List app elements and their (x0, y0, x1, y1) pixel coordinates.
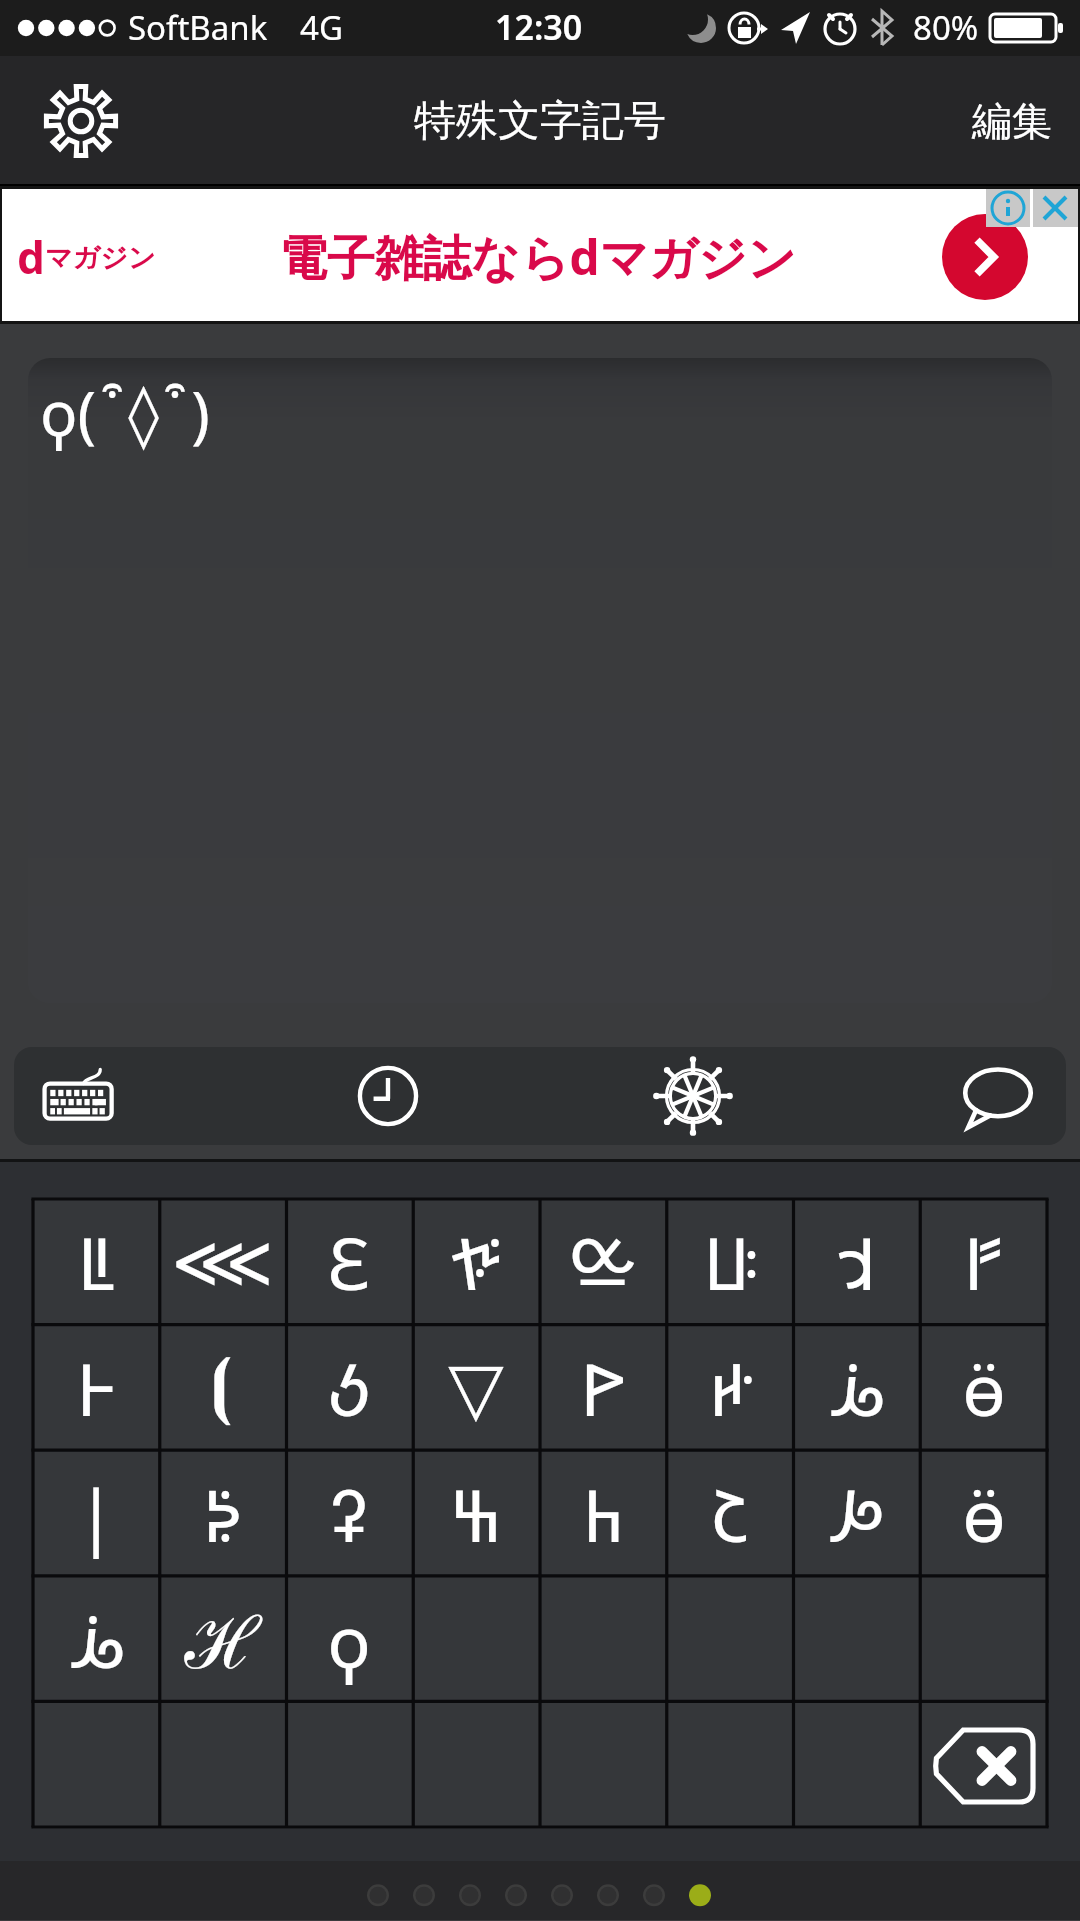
staticText: ϙ( ͒ ◊ ͒ ) (40, 370, 210, 454)
button[interactable]: Symbols (633, 1047, 753, 1145)
button[interactable]: | (33, 1451, 159, 1577)
button[interactable]: Keyboard (22, 1047, 142, 1145)
button[interactable] (793, 1703, 920, 1829)
staticText: ꚰ (580, 1339, 626, 1437)
button[interactable]: ℋ (159, 1577, 285, 1703)
button[interactable]: ꚾ (412, 1451, 539, 1577)
staticText: Ɛ (327, 1213, 370, 1311)
button[interactable]: ꚱ (33, 1325, 159, 1451)
button[interactable] (793, 1577, 920, 1703)
staticText: ꛆ (836, 1213, 877, 1311)
button[interactable]: ꚳ (33, 1199, 159, 1325)
staticText: ϙ (327, 1591, 371, 1689)
button[interactable] (539, 1577, 666, 1703)
staticText: ꛊ (830, 1465, 884, 1563)
button[interactable]: ꚶ (666, 1199, 793, 1325)
button[interactable] (920, 1577, 1047, 1703)
staticText: ꚮ (202, 1465, 242, 1563)
button[interactable]: ꛆ (793, 1199, 920, 1325)
button[interactable]: ⋘ (159, 1199, 285, 1325)
button[interactable] (412, 1577, 539, 1703)
button[interactable]: ꛍ (285, 1451, 412, 1577)
button[interactable]: ꚰ (539, 1325, 666, 1451)
button[interactable]: ꛊ (793, 1451, 920, 1577)
staticText: ꛡ (569, 1213, 636, 1311)
staticText: 電子雑誌ならdマガジン (279, 224, 797, 290)
staticText: ꚶ (703, 1213, 757, 1311)
button[interactable]: ꛡ (539, 1199, 666, 1325)
staticText: ꛅ (708, 1339, 752, 1437)
button[interactable]: Emoticons (938, 1047, 1058, 1145)
button[interactable] (285, 1703, 412, 1829)
staticText: ꚽ (327, 1339, 371, 1437)
staticText: ꚱ (76, 1339, 116, 1437)
button[interactable] (920, 1703, 1047, 1829)
button[interactable]: ꛖ (539, 1451, 666, 1577)
button[interactable]: Ɛ (285, 1199, 412, 1325)
button[interactable]: ꚷ (412, 1199, 539, 1325)
button[interactable]: ▽ (412, 1325, 539, 1451)
staticText: ꚤ (831, 1339, 882, 1437)
staticText: 4G (300, 5, 343, 50)
button[interactable] (33, 1703, 159, 1829)
button[interactable]: ӫ (920, 1451, 1047, 1577)
button[interactable]: ꛅ (666, 1325, 793, 1451)
button[interactable]: 編集 (962, 84, 1062, 158)
staticText: マガジン (45, 241, 156, 275)
staticText: 特殊文字記号 (414, 95, 666, 148)
staticText: 12:30 (495, 4, 583, 50)
button[interactable] (159, 1703, 285, 1829)
button[interactable]: ꛂ (920, 1199, 1047, 1325)
staticText: ꚷ (450, 1213, 502, 1311)
button[interactable]: ꚤ (33, 1577, 159, 1703)
staticText: ӫ (962, 1339, 1006, 1437)
button[interactable]: ꛢ (666, 1451, 793, 1577)
button[interactable]: ꚤ (793, 1325, 920, 1451)
staticText: ⦗ (210, 1352, 234, 1424)
staticText: ꛖ (582, 1465, 624, 1563)
staticText: ꛢ (710, 1465, 749, 1563)
button[interactable] (666, 1703, 793, 1829)
staticText: ꛂ (964, 1213, 1003, 1311)
staticText: | (76, 1465, 116, 1563)
staticText: ℋ (184, 1591, 261, 1689)
button[interactable]: ϙ( ͒ ◊ ͒ ) (28, 358, 1052, 1003)
button[interactable]: ϙ (285, 1577, 412, 1703)
staticText: ▽ (448, 1346, 504, 1430)
staticText: 編集 (972, 96, 1052, 146)
button[interactable]: d (2, 189, 1078, 321)
button[interactable]: Recent (328, 1047, 448, 1145)
button[interactable] (539, 1703, 666, 1829)
staticText: ⋘ (171, 1220, 274, 1304)
button[interactable]: ꚽ (285, 1325, 412, 1451)
button[interactable]: Settings (26, 66, 136, 176)
staticText: ӫ (962, 1465, 1006, 1563)
button[interactable]: ⦗ (159, 1325, 285, 1451)
staticText: ꛍ (329, 1465, 369, 1563)
staticText: ꚾ (449, 1465, 503, 1563)
button[interactable] (412, 1703, 539, 1829)
staticText: 80% (913, 5, 979, 50)
staticText: ꚳ (77, 1213, 115, 1311)
button[interactable]: ꚮ (159, 1451, 285, 1577)
staticText: SoftBank (128, 5, 268, 50)
button[interactable]: ӫ (920, 1325, 1047, 1451)
button[interactable]: Open ad (942, 214, 1028, 300)
staticText: ꚤ (71, 1591, 122, 1689)
button[interactable] (666, 1577, 793, 1703)
staticText: d (17, 227, 45, 287)
